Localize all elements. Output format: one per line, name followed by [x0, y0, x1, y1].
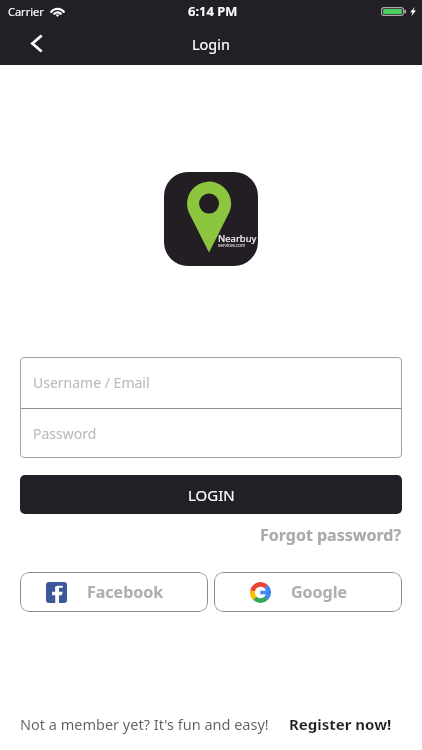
button[interactable]: Back	[14, 22, 57, 65]
staticText: Nearbuy	[218, 232, 257, 245]
staticText: 6:14 PM	[188, 2, 238, 20]
staticText: Register now!	[289, 714, 392, 734]
staticText: Carrier	[8, 4, 44, 19]
button[interactable]: Password	[20, 409, 402, 458]
staticText: services.com	[218, 242, 246, 248]
staticText: Facebook	[87, 581, 164, 603]
staticText: Login	[192, 34, 230, 54]
staticText: Forgot password?	[260, 524, 402, 546]
staticText: LOGIN	[188, 485, 235, 505]
button[interactable]: Google	[214, 572, 402, 612]
staticText: Google	[291, 581, 348, 603]
button[interactable]: Forgot password?	[260, 524, 402, 546]
staticText: Username / Email	[33, 373, 150, 392]
button[interactable]: Username / Email	[20, 357, 402, 408]
button[interactable]: LOGIN	[20, 475, 402, 514]
button[interactable]: Register now!	[289, 714, 392, 734]
staticText: Password	[33, 424, 97, 443]
staticText: Not a member yet? It's fun and easy!	[20, 714, 269, 734]
button[interactable]: Facebook	[20, 572, 208, 612]
